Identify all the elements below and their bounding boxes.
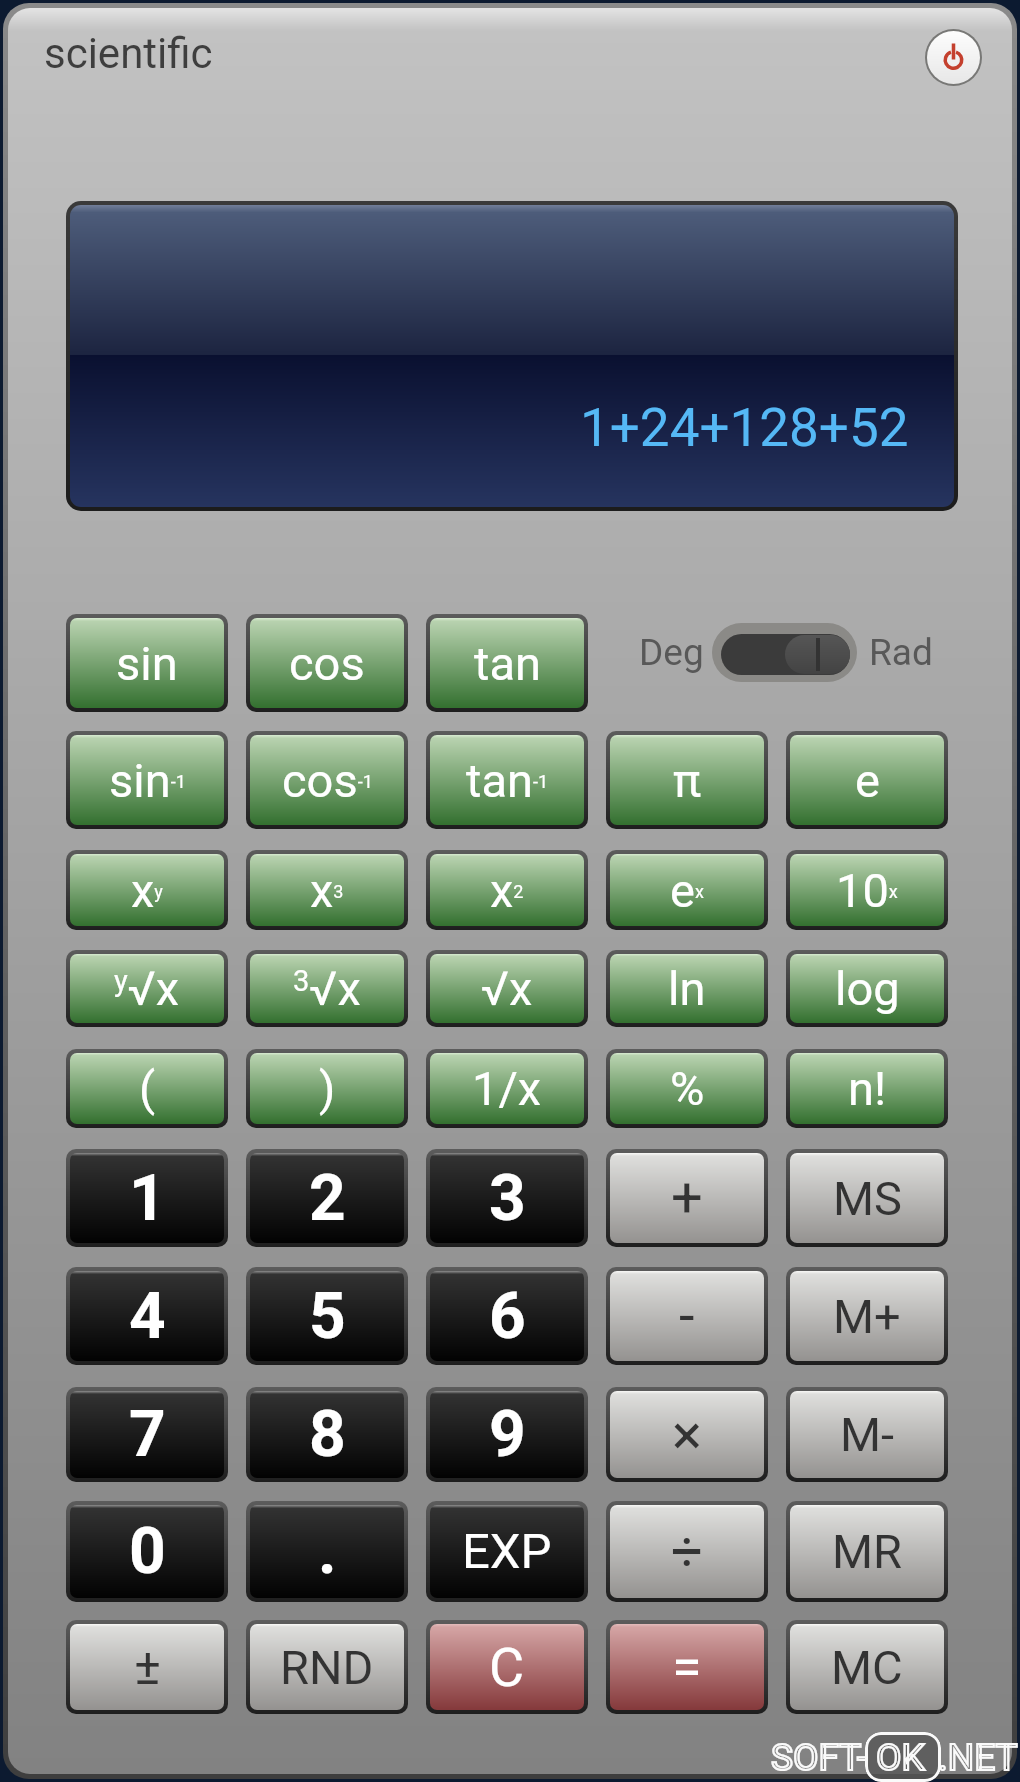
- staticText: 4: [129, 1279, 166, 1354]
- button[interactable]: sin: [66, 614, 228, 712]
- staticText: Rad: [869, 631, 933, 674]
- button[interactable]: 1: [66, 1149, 228, 1247]
- button[interactable]: ): [246, 1049, 408, 1128]
- button[interactable]: π: [606, 731, 768, 829]
- button[interactable]: MR: [786, 1501, 948, 1602]
- staticText: 7: [129, 1397, 166, 1472]
- button[interactable]: xy: [66, 850, 228, 930]
- button[interactable]: tan: [426, 614, 588, 712]
- staticText: 3√x: [293, 961, 361, 1016]
- button[interactable]: M+: [786, 1267, 948, 1365]
- staticText: 9: [489, 1397, 526, 1472]
- staticText: EXP: [462, 1523, 552, 1580]
- button[interactable]: %: [606, 1049, 768, 1128]
- staticText: MR: [832, 1524, 902, 1579]
- staticText: x3: [310, 863, 344, 918]
- button[interactable]: 5: [246, 1267, 408, 1365]
- button[interactable]: sin-1: [66, 731, 228, 829]
- button[interactable]: 0: [66, 1501, 228, 1602]
- staticText: x2: [490, 863, 524, 918]
- button[interactable]: (: [66, 1049, 228, 1128]
- staticText: MS: [833, 1171, 902, 1226]
- button[interactable]: tan-1: [426, 731, 588, 829]
- staticText: ±: [134, 1638, 161, 1697]
- button[interactable]: ×: [606, 1387, 768, 1482]
- staticText: Deg: [639, 631, 704, 674]
- button[interactable]: .: [246, 1501, 408, 1602]
- staticText: 2: [309, 1161, 346, 1236]
- staticText: 10x: [836, 863, 898, 918]
- staticText: ): [319, 1061, 336, 1116]
- button[interactable]: 4: [66, 1267, 228, 1365]
- button[interactable]: 8: [246, 1387, 408, 1482]
- button[interactable]: y√x: [66, 950, 228, 1027]
- staticText: RND: [280, 1640, 374, 1695]
- staticText: .NET: [938, 1736, 1018, 1779]
- button[interactable]: ÷: [606, 1501, 768, 1602]
- button[interactable]: 6: [426, 1267, 588, 1365]
- staticText: scientific: [44, 29, 213, 78]
- staticText: (: [139, 1061, 156, 1116]
- button[interactable]: 9: [426, 1387, 588, 1482]
- button[interactable]: 3: [426, 1149, 588, 1247]
- staticText: cos-1: [282, 753, 373, 808]
- staticText: π: [673, 753, 702, 808]
- button[interactable]: √x: [426, 950, 588, 1027]
- staticText: .: [318, 1514, 337, 1589]
- button[interactable]: e: [786, 731, 948, 829]
- staticText: cos: [289, 636, 365, 691]
- staticText: MC: [831, 1640, 903, 1695]
- staticText: SOFT-: [771, 1736, 868, 1779]
- staticText: 6: [489, 1279, 526, 1354]
- staticText: -: [679, 1283, 695, 1349]
- staticText: M-: [840, 1407, 895, 1462]
- staticText: tan: [474, 636, 541, 691]
- button[interactable]: cos: [246, 614, 408, 712]
- button[interactable]: 2: [246, 1149, 408, 1247]
- button[interactable]: -: [606, 1267, 768, 1365]
- staticText: n!: [848, 1061, 887, 1116]
- staticText: ln: [668, 961, 706, 1016]
- button[interactable]: EXP: [426, 1501, 588, 1602]
- button[interactable]: 1/x: [426, 1049, 588, 1128]
- button[interactable]: n!: [786, 1049, 948, 1128]
- staticText: +: [671, 1165, 703, 1231]
- staticText: 5: [309, 1279, 346, 1354]
- button[interactable]: cos-1: [246, 731, 408, 829]
- staticText: ex: [670, 863, 704, 918]
- button[interactable]: log: [786, 950, 948, 1027]
- button[interactable]: x2: [426, 850, 588, 930]
- button[interactable]: Degrees or radians toggle: [712, 623, 857, 682]
- button[interactable]: MS: [786, 1149, 948, 1247]
- button[interactable]: =: [606, 1620, 768, 1714]
- staticText: C: [489, 1636, 525, 1699]
- button[interactable]: ln: [606, 950, 768, 1027]
- button[interactable]: ±: [66, 1620, 228, 1714]
- staticText: log: [835, 961, 900, 1016]
- button[interactable]: 3√x: [246, 950, 408, 1027]
- staticText: xy: [131, 863, 163, 918]
- staticText: 3: [489, 1161, 526, 1236]
- staticText: ×: [672, 1402, 702, 1468]
- button[interactable]: 10x: [786, 850, 948, 930]
- button[interactable]: M-: [786, 1387, 948, 1482]
- staticText: sin: [116, 636, 178, 691]
- button[interactable]: C: [426, 1620, 588, 1714]
- button[interactable]: 7: [66, 1387, 228, 1482]
- staticText: tan-1: [466, 753, 549, 808]
- button[interactable]: ex: [606, 850, 768, 930]
- button[interactable]: MC: [786, 1620, 948, 1714]
- button[interactable]: +: [606, 1149, 768, 1247]
- staticText: 1: [129, 1161, 166, 1236]
- staticText: sin-1: [109, 753, 186, 808]
- staticText: OK: [876, 1736, 925, 1779]
- staticText: 1+24+128+52: [580, 397, 909, 459]
- staticText: 1/x: [472, 1061, 542, 1116]
- button[interactable]: x3: [246, 850, 408, 930]
- staticText: M+: [833, 1289, 901, 1344]
- button[interactable]: RND: [246, 1620, 408, 1714]
- staticText: %: [670, 1061, 705, 1116]
- staticText: =: [672, 1636, 702, 1699]
- staticText: y√x: [114, 961, 180, 1016]
- button[interactable]: Power: [925, 29, 982, 86]
